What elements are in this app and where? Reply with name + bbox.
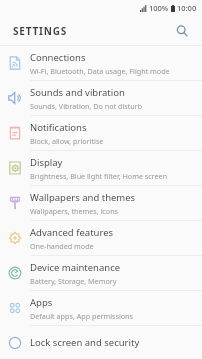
button[interactable]: Display <box>0 151 202 185</box>
button[interactable]: Lock screen and security <box>0 326 202 359</box>
staticText: Device maintenance <box>30 261 121 274</box>
staticText: Block, allow, prioritise <box>30 136 104 146</box>
staticText: Battery, Storage, Memory <box>30 276 117 286</box>
staticText: Display <box>30 156 63 169</box>
staticText: Advanced features <box>30 226 114 239</box>
button[interactable]: Sounds and vibration <box>0 81 202 115</box>
staticText: 100% <box>149 3 169 13</box>
staticText: Notifications <box>30 121 87 134</box>
staticText: Wallpapers and themes <box>30 191 136 204</box>
staticText: Lock screen and security <box>30 336 140 349</box>
staticText: Sounds and vibration <box>30 86 125 99</box>
staticText: Wallpapers, themes, icons <box>30 206 119 216</box>
staticText: One-handed mode <box>30 241 94 251</box>
staticText: SETTINGS <box>13 24 68 38</box>
staticText: Connections <box>30 51 86 64</box>
staticText: Brightness, Blue light filter, Home scre… <box>30 171 168 181</box>
button[interactable]: Apps <box>0 291 202 325</box>
button[interactable]: Connections <box>0 46 202 80</box>
staticText: Wi-Fi, Bluetooth, Data usage, Flight mod… <box>30 66 170 76</box>
staticText: Sounds, Vibration, Do not disturb <box>30 101 143 111</box>
button[interactable]: Notifications <box>0 116 202 150</box>
button[interactable]: Search <box>170 19 194 43</box>
button[interactable]: Device maintenance <box>0 256 202 290</box>
staticText: 10:00 <box>177 3 197 13</box>
button[interactable]: Wallpapers and themes <box>0 186 202 220</box>
staticText: Default apps, App permissions <box>30 311 133 321</box>
button[interactable]: Advanced features <box>0 221 202 255</box>
staticText: Apps <box>30 296 53 309</box>
